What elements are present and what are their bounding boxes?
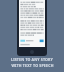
staticText: LISTEN TO ANY STORY <box>11 57 53 62</box>
staticText: WITH TEXT TO SPEECH <box>11 63 54 68</box>
button[interactable]: Home <box>30 50 34 54</box>
button[interactable]: Home <box>17 0 47 56</box>
